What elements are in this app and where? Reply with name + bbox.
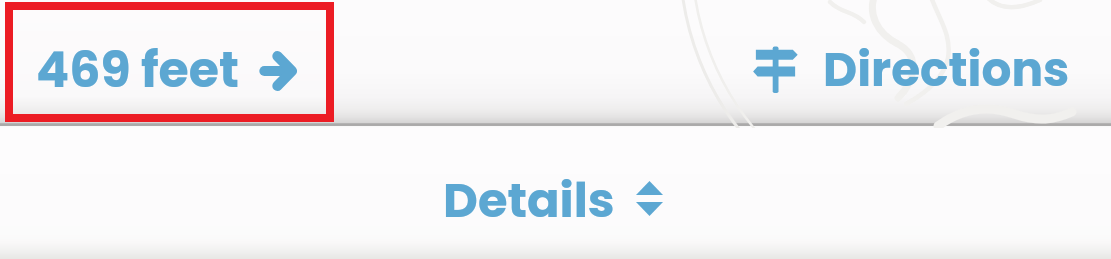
other: Directions (748, 45, 798, 93)
staticText: Details (443, 167, 615, 234)
staticText: 469 feet (36, 36, 239, 105)
staticText: Directions (823, 37, 1070, 103)
other: Go (259, 51, 299, 93)
button[interactable]: Details (430, 155, 680, 235)
button[interactable]: Directions (735, 26, 1083, 100)
button[interactable]: 469 feet (5, 2, 334, 122)
